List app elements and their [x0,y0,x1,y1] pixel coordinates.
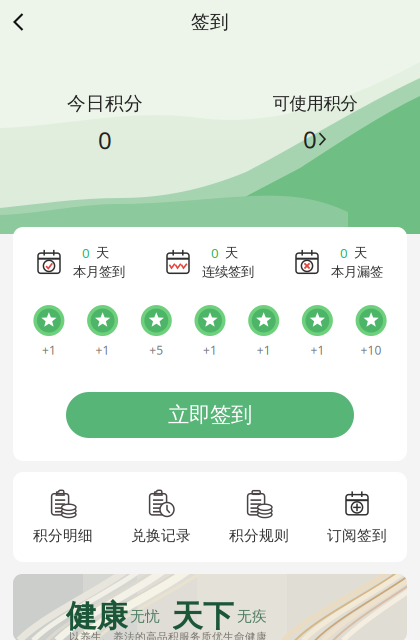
button[interactable]: 兑换记录 [112,477,210,557]
staticText: 无疾 [237,607,267,625]
staticText: 天 [354,245,367,261]
staticText: 天下 [172,597,234,635]
staticText: 今日积分 [67,92,143,115]
staticText: 0 [340,244,348,262]
staticText: 0 [303,123,317,155]
staticText: 健康 [66,597,128,635]
staticText: +10 [361,342,382,358]
staticText: 连续签到 [202,264,254,280]
staticText: 可使用积分 [272,93,357,114]
staticText: +5 [149,342,163,358]
staticText: 订阅签到 [327,526,387,544]
staticText: 积分规则 [229,526,289,544]
staticText: 无忧 [130,607,160,625]
button[interactable]: 订阅签到 [308,477,406,557]
staticText: +1 [257,342,271,358]
staticText: 本月漏签 [331,264,383,280]
staticText: +1 [96,342,110,358]
staticText: 0 [82,244,90,262]
staticText: 签到 [191,10,229,33]
button[interactable]: 今日积分 [0,97,210,151]
staticText: 天 [96,245,109,261]
staticText: +1 [310,342,324,358]
staticText: 天 [225,245,238,261]
staticText: 立即签到 [168,402,252,428]
staticText: 0 [211,244,219,262]
button[interactable]: 可使用积分 [210,97,420,151]
button[interactable]: 立即签到 [66,392,354,438]
staticText: 积分明细 [33,526,93,544]
button[interactable]: 积分规则 [210,477,308,557]
staticText: 本月签到 [73,264,125,280]
staticText: 兑换记录 [131,526,191,544]
staticText: +1 [42,342,56,358]
button[interactable]: 积分明细 [14,477,112,557]
staticText: +1 [203,342,217,358]
staticText: 以养生、养法的高品积服务质优生命健康 [69,630,267,640]
staticText: 0 [98,124,112,156]
button[interactable]: Back [0,0,37,44]
